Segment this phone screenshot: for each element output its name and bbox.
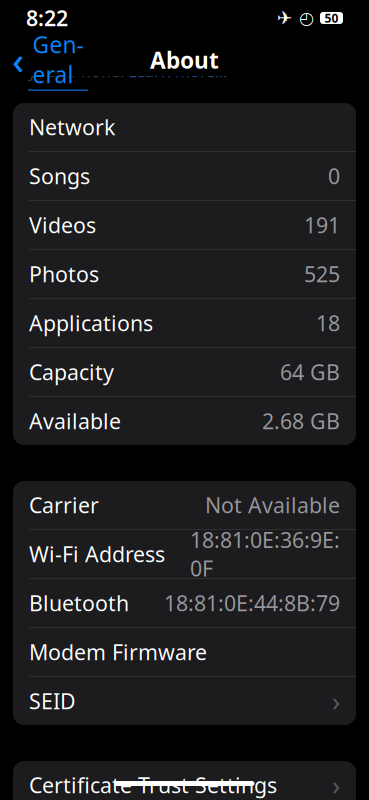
staticText: ›	[332, 683, 340, 719]
staticText: 2.68 GB	[262, 407, 340, 435]
button[interactable]: Bluetooth	[13, 579, 356, 627]
staticText: 525	[304, 260, 340, 288]
button[interactable]: Videos	[13, 201, 356, 249]
staticText: ◴	[299, 8, 314, 28]
button[interactable]: Modem Firmware	[13, 628, 356, 676]
staticText: 8:22	[26, 4, 68, 32]
button[interactable]: Applications	[13, 299, 356, 347]
staticText: Available	[29, 407, 121, 435]
button[interactable]: Songs	[13, 152, 356, 200]
staticText: 0	[328, 162, 340, 190]
staticText: SEID	[29, 687, 76, 715]
staticText: Network	[29, 113, 115, 141]
staticText: Wi-Fi Address	[29, 540, 165, 568]
staticText: 18	[316, 309, 340, 337]
staticText: 50	[324, 10, 338, 26]
staticText: About	[150, 45, 219, 75]
button[interactable]: Network	[13, 103, 356, 151]
button[interactable]: SEID	[13, 677, 356, 725]
staticText: 64 GB	[280, 358, 340, 386]
staticText: Songs	[29, 162, 90, 190]
staticText: Modem Firmware	[29, 638, 207, 666]
staticText: Capacity	[29, 358, 114, 386]
staticText: 191	[304, 211, 340, 239]
staticText: 18:81:0E:36:9E:0F	[190, 526, 340, 582]
staticText: ‹	[12, 35, 24, 85]
button[interactable]: Capacity	[13, 348, 356, 396]
staticText: Applications	[29, 309, 153, 337]
button[interactable]: Certificate Trust Settings	[13, 761, 356, 800]
staticText: General	[32, 29, 83, 90]
staticText: your iPhone.	[28, 60, 128, 82]
button[interactable]: Carrier	[13, 481, 356, 529]
staticText: Learn more...	[128, 60, 227, 82]
staticText: ›	[332, 767, 340, 800]
staticText: Videos	[29, 211, 96, 239]
staticText: Photos	[29, 260, 99, 288]
staticText: Bluetooth	[29, 589, 129, 617]
staticText: Carrier	[29, 491, 99, 519]
staticText: Certificate Trust Settings	[29, 771, 277, 799]
button[interactable]: Photos	[13, 250, 356, 298]
staticText: 18:81:0E:44:8B:79	[164, 589, 340, 617]
staticText: ✈	[277, 7, 293, 29]
staticText: Not Available	[205, 491, 340, 519]
button[interactable]: Wi-Fi Address	[13, 530, 356, 578]
button[interactable]: Available	[13, 397, 356, 445]
button[interactable]: ‹	[4, 40, 96, 80]
